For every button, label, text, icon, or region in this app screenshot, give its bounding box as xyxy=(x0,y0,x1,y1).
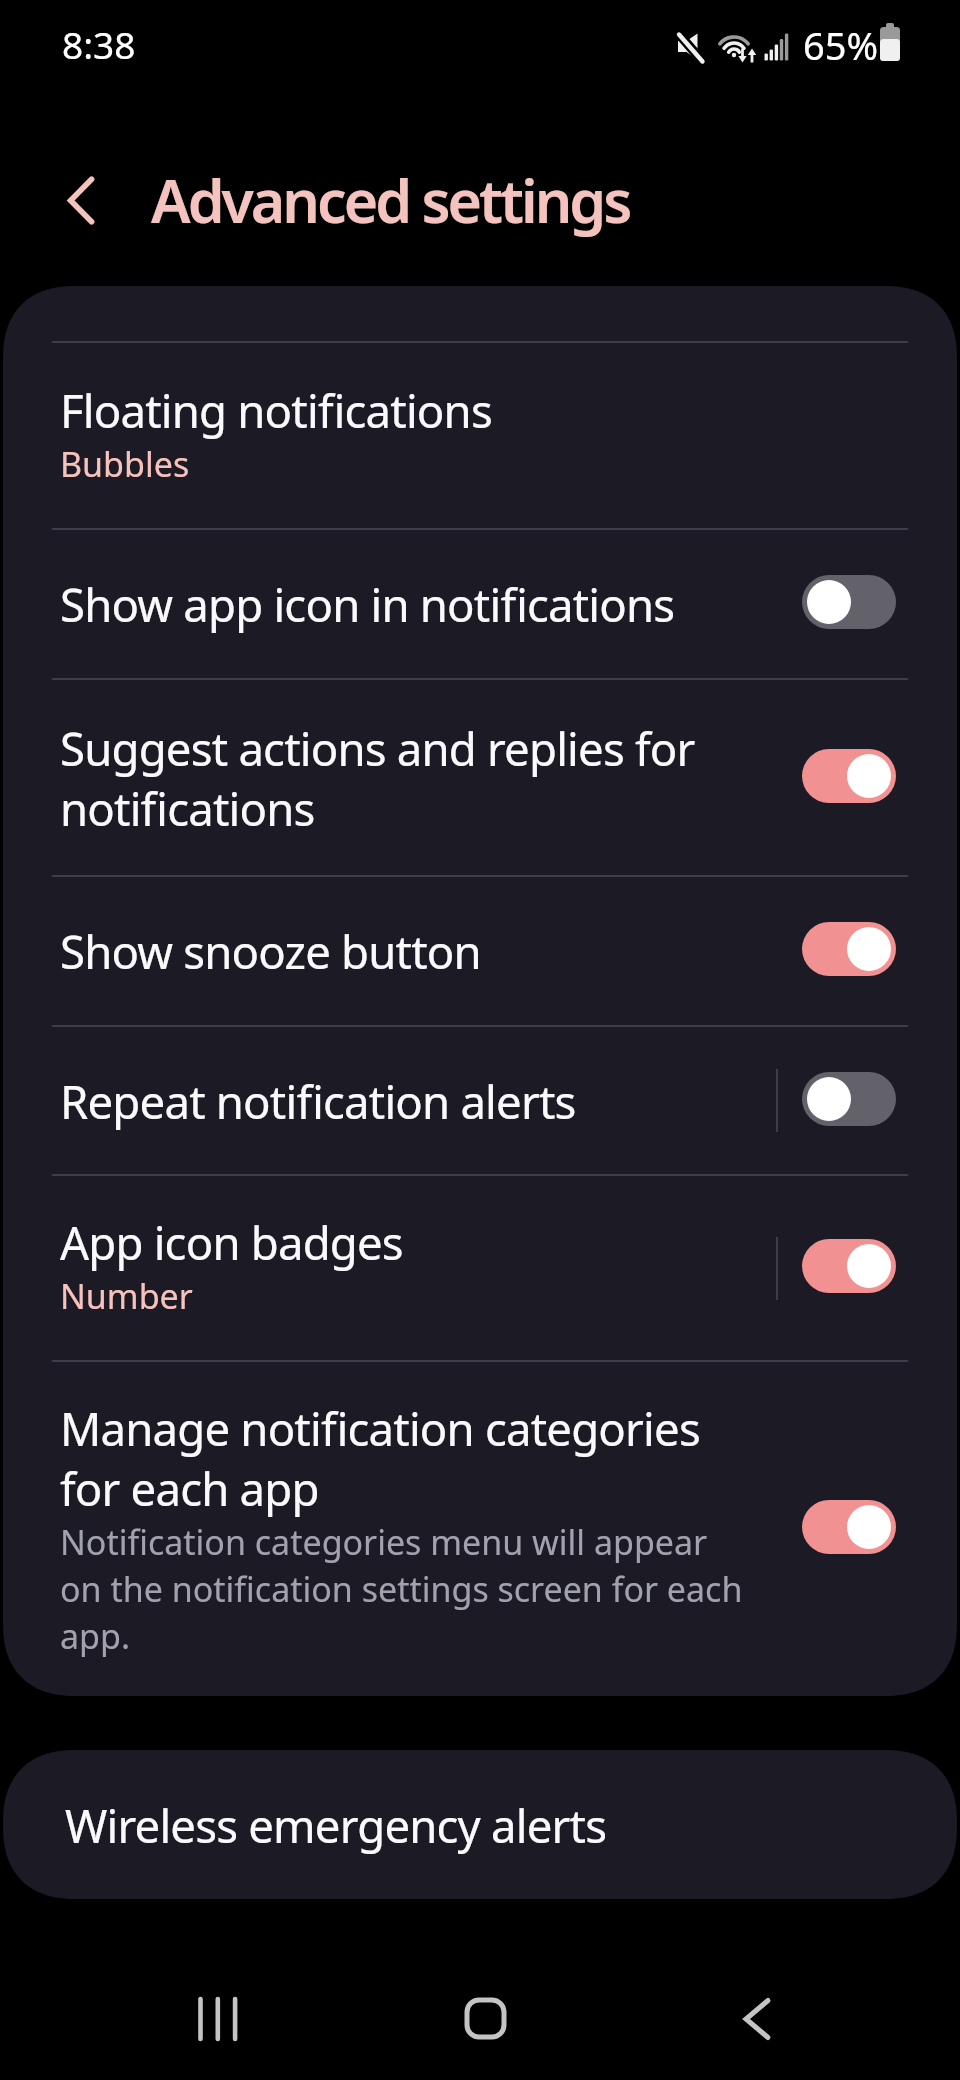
staticText: Advanced settings xyxy=(151,160,630,240)
staticText: Manage notification categories for each … xyxy=(60,1397,700,1519)
staticText: 8:38 xyxy=(62,19,136,69)
staticText: Bubbles xyxy=(60,441,190,487)
button[interactable]: Show app icon in notifications xyxy=(3,530,957,678)
button[interactable]: Repeat notification alerts xyxy=(3,1027,957,1174)
button[interactable]: Navigate up xyxy=(46,170,104,228)
button[interactable]: Switch on xyxy=(802,922,896,976)
staticText: Wireless emergency alerts xyxy=(65,1794,607,1856)
button[interactable]: Switch off xyxy=(802,1072,896,1126)
staticText: Repeat notification alerts xyxy=(60,1070,576,1132)
staticText: Number xyxy=(60,1273,193,1319)
staticText: Notification categories menu will appear… xyxy=(60,1519,743,1659)
button[interactable]: Switch on xyxy=(802,1500,896,1554)
button[interactable]: Suggest actions and replies for notifica… xyxy=(3,680,957,875)
button[interactable]: Switch off xyxy=(802,575,896,629)
button[interactable]: Floating notifications xyxy=(3,343,957,528)
button[interactable]: Wireless emergency alerts xyxy=(3,1750,957,1899)
button[interactable]: Switch on xyxy=(802,749,896,803)
button[interactable]: Manage notification categories for each … xyxy=(3,1362,957,1696)
button[interactable]: Back xyxy=(724,1988,786,2050)
button[interactable]: Show snooze button xyxy=(3,877,957,1025)
button[interactable]: Home xyxy=(454,1988,516,2050)
button[interactable]: Recent apps xyxy=(188,1988,250,2050)
staticText: Suggest actions and replies for notifica… xyxy=(60,717,695,839)
staticText: Show snooze button xyxy=(60,920,481,982)
button[interactable]: Switch on xyxy=(802,1239,896,1293)
staticText: Show app icon in notifications xyxy=(60,573,675,635)
staticText: Floating notifications xyxy=(60,379,492,441)
staticText: 65% xyxy=(803,19,879,71)
staticText: App icon badges xyxy=(60,1211,403,1273)
button[interactable]: App icon badges xyxy=(3,1176,957,1360)
